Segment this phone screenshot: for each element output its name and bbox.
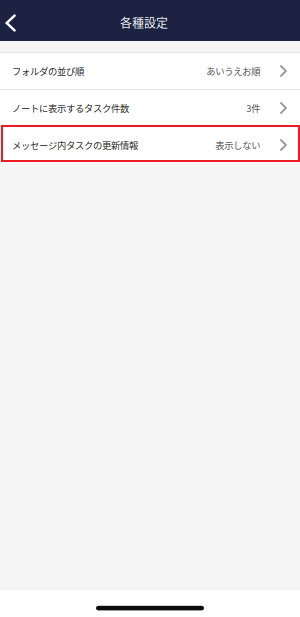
button[interactable]: フォルダの並び順	[0, 53, 300, 89]
staticText: メッセージ内タスクの更新情報	[12, 138, 138, 152]
staticText: 各種設定	[120, 14, 168, 31]
button[interactable]: ノートに表示するタスク件数	[0, 90, 300, 126]
staticText: フォルダの並び順	[12, 64, 84, 78]
staticText: あいうえお順	[206, 64, 260, 78]
staticText: 3件	[246, 101, 260, 115]
button[interactable]: Back	[0, 0, 22, 41]
button[interactable]: メッセージ内タスクの更新情報	[0, 127, 300, 163]
staticText: 表示しない	[215, 138, 260, 152]
staticText: ノートに表示するタスク件数	[12, 101, 129, 115]
